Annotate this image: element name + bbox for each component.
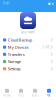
button[interactable]: My Devices [0, 43, 56, 51]
button[interactable]: Settings [0, 65, 56, 72]
button[interactable]: Transfers [0, 51, 56, 58]
staticText: Share [31, 94, 38, 97]
staticText: ■ ▮ [48, 2, 53, 5]
staticText: Home [3, 94, 11, 97]
button[interactable]: Cloud Backup [0, 36, 56, 43]
staticText: Files [18, 94, 24, 97]
staticText: App Name [21, 30, 35, 34]
button[interactable]: Me [42, 89, 56, 97]
button[interactable]: Share [28, 89, 42, 97]
staticText: My Devices [8, 44, 29, 50]
staticText: Cloud Backup [8, 37, 32, 43]
staticText: Transfers [8, 52, 25, 57]
staticText: Me [47, 94, 51, 97]
button[interactable]: Storage [0, 58, 56, 65]
staticText: 2 GB [42, 45, 49, 49]
button[interactable]: Files [14, 89, 28, 97]
button[interactable]: Home [0, 89, 14, 97]
staticText: Storage [8, 59, 21, 64]
staticText: 9:41 [3, 2, 10, 5]
staticText: Settings [8, 66, 21, 71]
